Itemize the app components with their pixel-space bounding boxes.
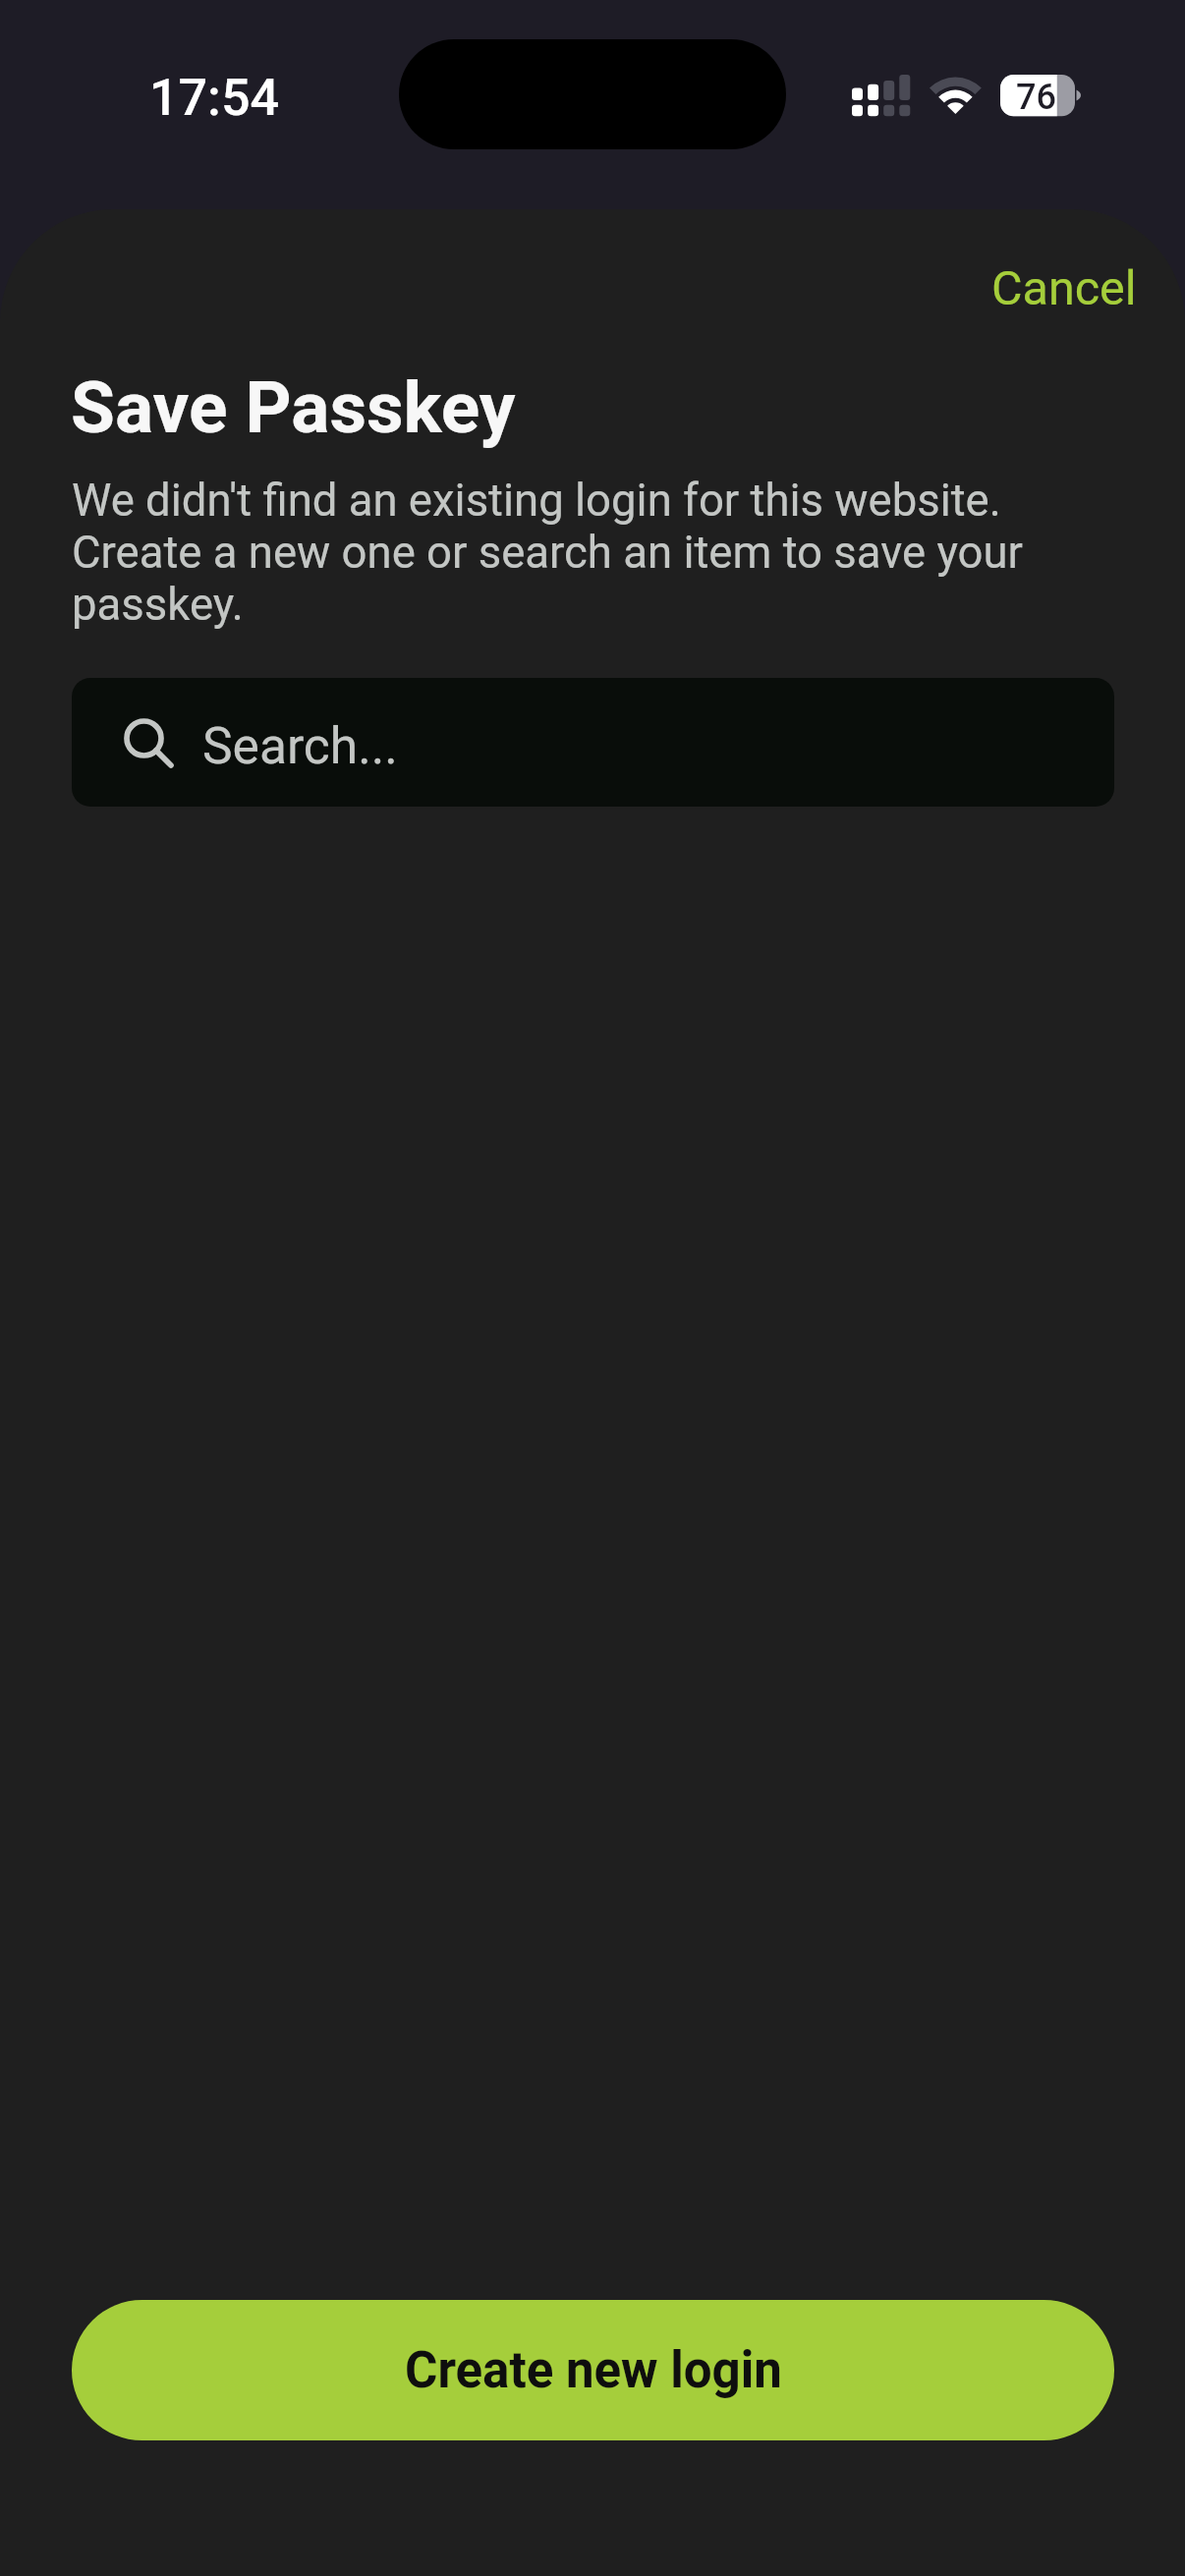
staticText: 76	[1016, 77, 1056, 118]
other: Mobile signal	[852, 75, 910, 117]
staticText: Create new login	[405, 2341, 782, 2400]
staticText: Cancel	[991, 260, 1137, 316]
staticText: We didn't find an existing login for thi…	[72, 475, 1044, 631]
other: Search	[124, 715, 179, 770]
other: Battery 76 percent	[1000, 75, 1083, 117]
staticText: Save Passkey	[71, 365, 516, 450]
staticText: Search...	[202, 716, 398, 775]
staticText: 17:54	[149, 68, 280, 128]
button[interactable]: Search	[72, 678, 1114, 807]
other: Wi-Fi	[930, 77, 982, 115]
button[interactable]: Cancel	[974, 247, 1155, 330]
button[interactable]: Create new login	[72, 2300, 1114, 2440]
